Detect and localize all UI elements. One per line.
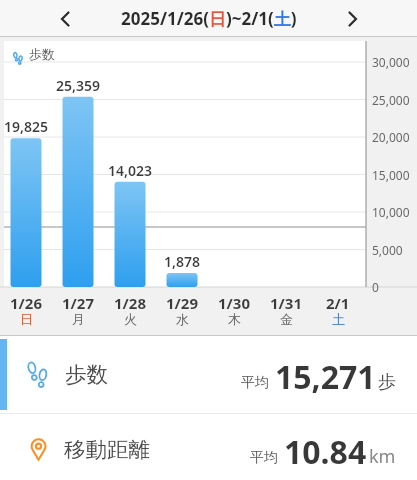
staticText: 月 [72,311,85,327]
staticText: 10,000 [372,204,410,220]
staticText: 土 [332,311,345,327]
staticText: 歩数 [29,46,55,62]
staticText: 1/30 [218,293,250,310]
staticText: 1/31 [270,293,302,310]
staticText: 25,000 [372,92,410,108]
staticText: 1/29 [166,293,198,310]
staticText: km [369,444,396,469]
button[interactable]: 移動距離 [0,414,417,480]
staticText: 2025/1/26(日)~2/1(土) [121,7,297,30]
staticText: 1,878 [164,252,200,270]
staticText: 30,000 [372,54,410,70]
button[interactable] [47,1,83,37]
staticText: 木 [228,311,241,327]
staticText: 19,825 [4,117,48,135]
staticText: 日 [20,311,33,327]
staticText: 5,000 [372,242,403,258]
staticText: 25,359 [56,76,100,94]
staticText: 水 [176,311,189,327]
staticText: 1/27 [62,293,94,310]
staticText: 2/1 [326,293,350,310]
staticText: 歩 [378,371,396,394]
staticText: 14,023 [108,161,152,179]
staticText: 15,000 [372,167,410,183]
staticText: 10.84 [284,430,367,474]
staticText: 1/26 [10,293,42,310]
staticText: 金 [280,311,293,327]
staticText: 0 [372,279,379,295]
staticText: 平均 [241,374,269,392]
button[interactable] [334,1,370,37]
staticText: 歩数 [65,361,108,388]
button[interactable]: 歩数 [0,336,417,413]
staticText: 15,271 [275,355,376,399]
staticText: 平均 [250,449,278,467]
staticText: 火 [124,311,137,327]
staticText: 20,000 [372,129,410,145]
staticText: 1/28 [114,293,146,310]
staticText: 移動距離 [64,436,150,463]
